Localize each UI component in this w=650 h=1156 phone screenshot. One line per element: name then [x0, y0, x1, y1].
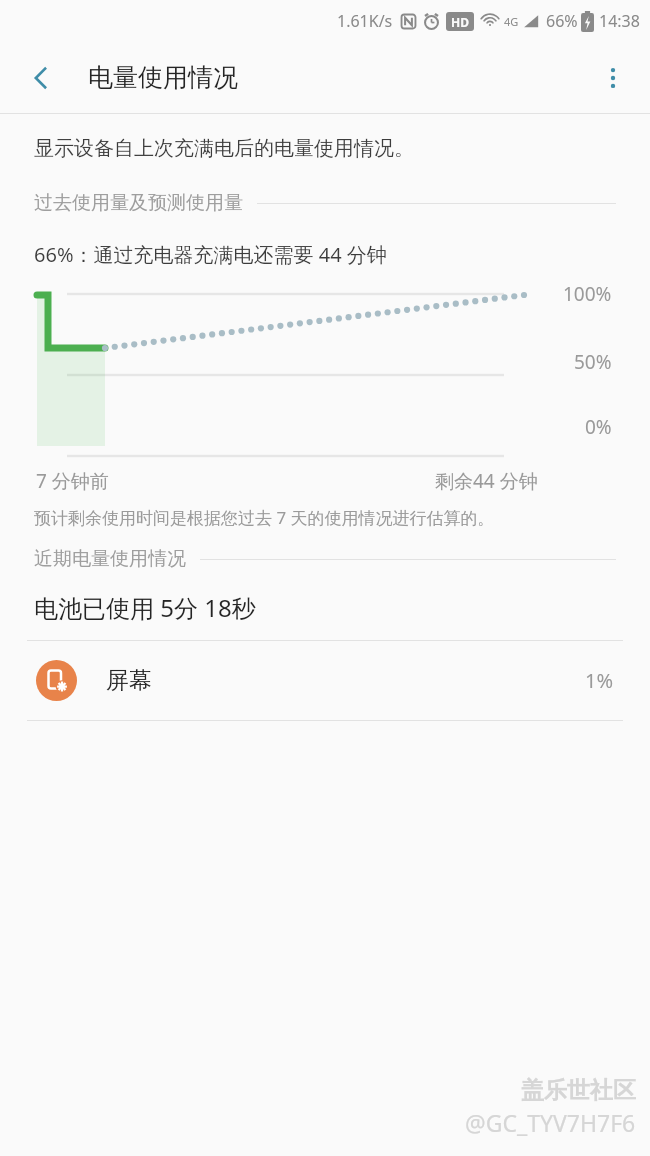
staticText: 1.61K/s [337, 10, 393, 32]
staticText: 盖乐世社区 [521, 1076, 636, 1105]
staticText: 14:38 [599, 10, 640, 32]
button[interactable]: Back [14, 51, 68, 105]
staticText: 电量使用情况 [88, 62, 238, 93]
staticText: 50% [574, 349, 612, 375]
staticText: 显示设备自上次充满电后的电量使用情况。 [34, 136, 414, 161]
button[interactable]: More options [586, 51, 640, 105]
staticText: 0% [585, 414, 612, 440]
staticText: 1% [585, 667, 614, 694]
staticText: 电池已使用 5分 18秒 [34, 591, 256, 624]
staticText: 4G [504, 14, 519, 29]
staticText: @GC_TYV7H7F6 [465, 1107, 636, 1138]
button[interactable]: 屏幕 [0, 641, 650, 720]
staticText: 预计剩余使用时间是根据您过去 7 天的使用情况进行估算的。 [34, 506, 495, 529]
staticText: 66%：通过充电器充满电还需要 44 分钟 [34, 241, 387, 268]
staticText: 66% [546, 10, 578, 32]
staticText: 屏幕 [106, 666, 152, 695]
staticText: HD [451, 14, 469, 30]
staticText: 近期电量使用情况 [34, 547, 186, 571]
staticText: 100% [563, 281, 612, 307]
staticText: 7 分钟前 [36, 468, 109, 494]
staticText: 剩余44 分钟 [435, 468, 538, 494]
staticText: 过去使用量及预测使用量 [34, 191, 243, 215]
